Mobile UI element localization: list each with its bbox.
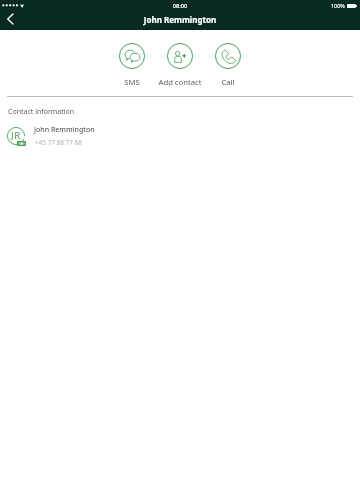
button[interactable]: Call (198, 43, 258, 87)
staticText: Contact information (8, 107, 75, 117)
staticText: SMS (102, 77, 162, 87)
button[interactable]: SMS (102, 43, 162, 87)
staticText: JR (11, 129, 21, 142)
staticText: Add contact (150, 77, 210, 87)
staticText: John Remmington (34, 125, 95, 135)
staticText: Call (198, 77, 258, 87)
staticText: +45 77 88 77 88 (35, 138, 82, 147)
staticText: 08:00 (0, 2, 360, 10)
button[interactable]: JR (0, 124, 360, 150)
staticText: 100% (331, 2, 345, 9)
button[interactable]: Add contact (150, 43, 210, 87)
button[interactable]: Back (0, 7, 20, 30)
staticText: John Remmington (0, 14, 360, 25)
